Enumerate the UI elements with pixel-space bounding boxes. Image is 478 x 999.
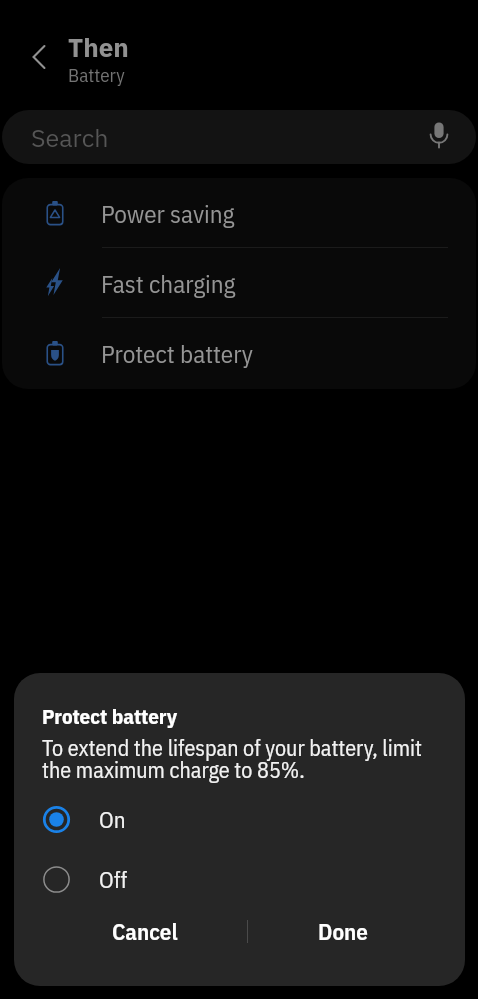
button[interactable]: Cancel [42, 908, 247, 954]
staticText: Then [68, 30, 129, 64]
staticText: Off [99, 864, 128, 894]
staticText: Cancel [112, 916, 178, 946]
staticText: Done [318, 916, 368, 946]
staticText: To extend the lifespan of your battery, … [42, 733, 423, 784]
button[interactable]: Search [2, 110, 476, 164]
staticText: On [99, 804, 126, 834]
staticText: Battery [68, 63, 125, 88]
button[interactable]: On [14, 796, 465, 842]
staticText: Search [31, 121, 109, 154]
staticText: Power saving [101, 197, 235, 230]
staticText: Protect battery [101, 337, 254, 370]
button[interactable]: Off [14, 856, 465, 902]
button[interactable]: Protect battery [2, 318, 476, 388]
staticText: Protect battery [42, 702, 178, 729]
button[interactable]: Done [248, 908, 437, 954]
staticText: Fast charging [101, 267, 236, 300]
button[interactable]: Voice search [422, 118, 456, 152]
button[interactable]: Back [15, 33, 63, 81]
button[interactable]: Power saving [2, 178, 476, 248]
button[interactable]: Fast charging [2, 248, 476, 318]
